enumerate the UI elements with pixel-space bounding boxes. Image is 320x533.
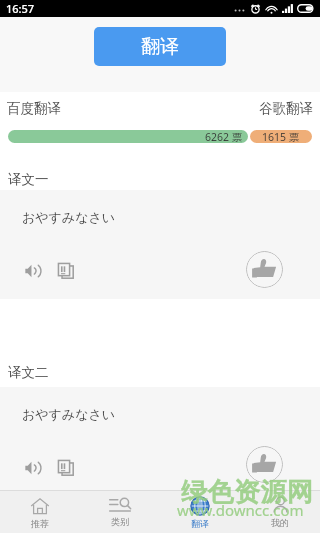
staticText: 译文一 <box>8 171 49 188</box>
staticText: 绿色资源网 <box>181 476 314 509</box>
staticText: 16:57 <box>6 1 35 16</box>
staticText: おやすみなさい <box>22 406 116 422</box>
button[interactable]: 类别 <box>80 491 160 533</box>
staticText: 谷歌翻译 <box>259 100 313 117</box>
staticText: 翻译 <box>141 35 179 59</box>
staticText: 推荐 <box>31 518 49 529</box>
staticText: 6262 票 <box>205 130 243 143</box>
button[interactable]: 翻译 <box>160 491 240 533</box>
staticText: 我的 <box>271 517 289 528</box>
button[interactable]: Copy text <box>53 457 79 479</box>
button[interactable]: 我的 <box>240 491 320 533</box>
button[interactable]: Like this translation <box>246 251 283 288</box>
staticText: 译文二 <box>8 364 49 381</box>
staticText: 类别 <box>111 516 129 527</box>
button[interactable]: 推荐 <box>0 491 80 533</box>
staticText: www.downcc.com <box>177 500 304 520</box>
staticText: 翻译 <box>191 518 209 529</box>
button[interactable]: Play pronunciation <box>20 457 46 479</box>
button[interactable]: Play pronunciation <box>20 260 46 282</box>
button[interactable]: Like this translation <box>246 446 283 483</box>
button[interactable]: Copy text <box>53 260 79 282</box>
staticText: 百度翻译 <box>7 100 61 117</box>
staticText: 1615 票 <box>262 130 300 143</box>
button[interactable]: 翻译 <box>94 27 226 66</box>
staticText: おやすみなさい <box>22 209 116 225</box>
